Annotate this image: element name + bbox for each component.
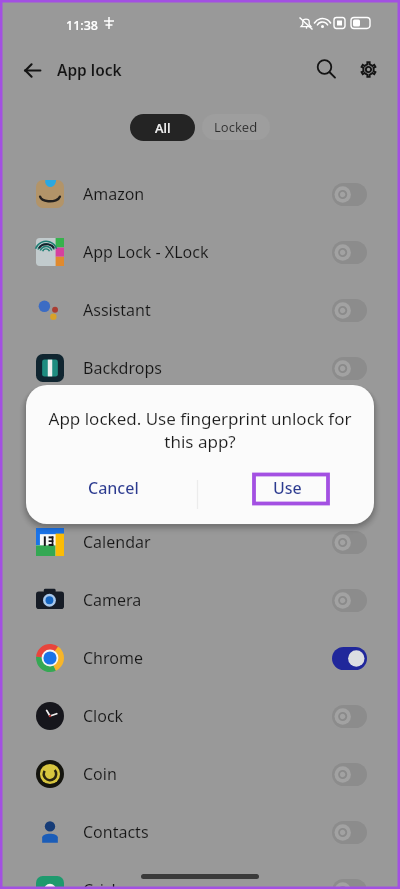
button[interactable]: Backdrops (0, 339, 400, 397)
staticText: Contacts (83, 821, 149, 843)
staticText: Chrome (83, 647, 143, 669)
staticText: Cricbuzz (83, 879, 147, 889)
staticText: App lock (57, 59, 122, 80)
button[interactable]: Search (305, 48, 347, 90)
button[interactable]: Lock app (332, 531, 367, 554)
button[interactable]: Calendar (0, 513, 400, 571)
button[interactable]: Lock app (332, 821, 367, 844)
staticText: Backdrops (83, 357, 162, 379)
button[interactable]: Lock app (332, 241, 367, 264)
button[interactable]: Lock app (332, 183, 367, 206)
button[interactable]: Lock app (332, 763, 367, 786)
button[interactable]: Booking.com (0, 455, 400, 513)
button[interactable]: Locked (202, 114, 270, 140)
button[interactable]: App Lock - XLock (0, 223, 400, 281)
button[interactable]: Lock app (332, 705, 367, 728)
staticText: Use (273, 477, 302, 499)
button[interactable]: Clock (0, 687, 400, 745)
button[interactable]: All (130, 114, 195, 141)
button[interactable]: Lock app (332, 357, 367, 380)
button[interactable]: Lock app (332, 299, 367, 322)
button[interactable]: Cancel (26, 470, 200, 506)
staticText: Assistant (83, 299, 151, 321)
button[interactable]: Lock app (332, 415, 367, 438)
staticText: All (155, 119, 171, 137)
staticText: Calendar (83, 531, 151, 553)
button[interactable]: Coin (0, 745, 400, 803)
staticText: 11:38 (66, 17, 99, 34)
staticText: Booking.com (83, 473, 182, 495)
button[interactable]: Camera (0, 571, 400, 629)
staticText: Locked (214, 118, 258, 136)
button[interactable]: Settings (347, 48, 389, 90)
staticText: App Lock - XLock (83, 241, 209, 263)
button[interactable]: Contacts (0, 803, 400, 861)
staticText: Camera (83, 589, 142, 611)
staticText: Coin (83, 763, 117, 785)
button[interactable]: Chrome (0, 629, 400, 687)
staticText: Clock (83, 705, 124, 727)
button[interactable]: Use (200, 470, 374, 506)
staticText: App locked. Use fingerprint unlock for t… (48, 407, 352, 453)
staticText: Bitmoji (83, 415, 137, 437)
button[interactable]: Lock app (332, 879, 367, 889)
staticText: Cancel (88, 477, 139, 499)
button[interactable]: Back (9, 47, 55, 93)
button[interactable]: Amazon (0, 165, 400, 223)
button[interactable]: Bitmoji (0, 397, 400, 455)
button[interactable]: Lock app (332, 589, 367, 612)
button[interactable]: Cricbuzz (0, 861, 400, 889)
button[interactable]: Assistant (0, 281, 400, 339)
button[interactable]: Lock app (332, 647, 367, 670)
staticText: Amazon (83, 183, 145, 205)
